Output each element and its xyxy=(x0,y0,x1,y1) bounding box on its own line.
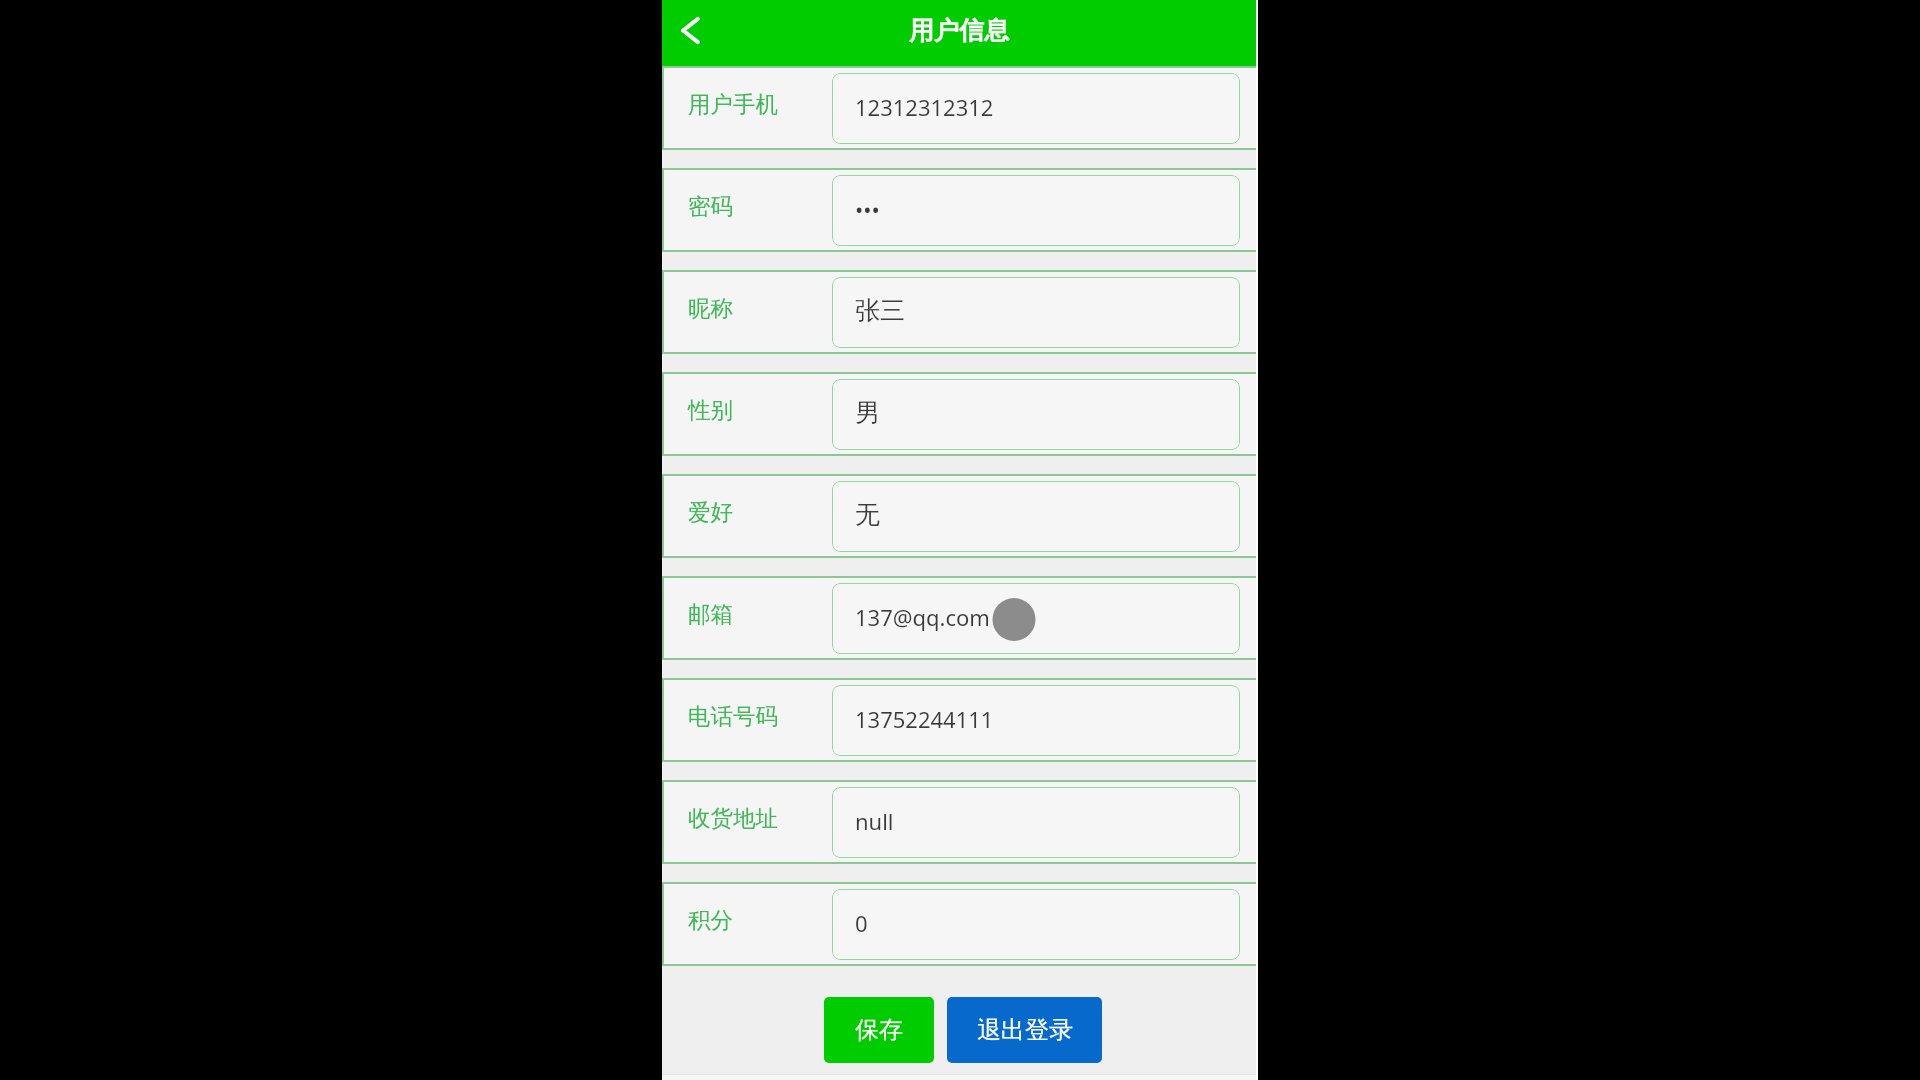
staticText: 密码 xyxy=(688,192,733,220)
staticText: 爱好 xyxy=(688,498,733,526)
staticText: 退出登录 xyxy=(977,1015,1073,1045)
button[interactable]: 密码 xyxy=(662,170,1256,250)
staticText: 收货地址 xyxy=(688,804,778,832)
button[interactable]: 昵称 xyxy=(662,272,1256,352)
staticText: 用户手机 xyxy=(688,90,778,118)
staticText: 12312312312 xyxy=(855,92,994,122)
button[interactable]: Back xyxy=(662,0,718,66)
staticText: null xyxy=(855,806,894,836)
button[interactable]: 性别 xyxy=(662,374,1256,454)
staticText: 男 xyxy=(855,397,880,428)
staticText: 性别 xyxy=(688,396,733,424)
staticText: 保存 xyxy=(855,1015,903,1045)
button[interactable]: 用户手机 xyxy=(662,68,1256,148)
staticText: 张三 xyxy=(855,295,905,326)
staticText: 用户信息 xyxy=(909,15,1009,46)
button[interactable]: 保存 xyxy=(824,997,934,1063)
staticText: 0 xyxy=(855,908,868,938)
staticText: 积分 xyxy=(688,906,733,934)
button[interactable]: 邮箱 xyxy=(662,578,1256,658)
staticText: ••• xyxy=(855,194,880,224)
staticText: 昵称 xyxy=(688,294,733,322)
staticText: 电话号码 xyxy=(688,702,778,730)
button[interactable]: 收货地址 xyxy=(662,782,1256,862)
button[interactable]: 电话号码 xyxy=(662,680,1256,760)
button[interactable]: 爱好 xyxy=(662,476,1256,556)
staticText: 邮箱 xyxy=(688,600,733,628)
staticText: 137@qq.com xyxy=(855,602,990,632)
button[interactable]: 退出登录 xyxy=(947,997,1102,1063)
button[interactable]: 积分 xyxy=(662,884,1256,964)
staticText: 无 xyxy=(855,499,880,530)
staticText: 13752244111 xyxy=(855,704,994,734)
